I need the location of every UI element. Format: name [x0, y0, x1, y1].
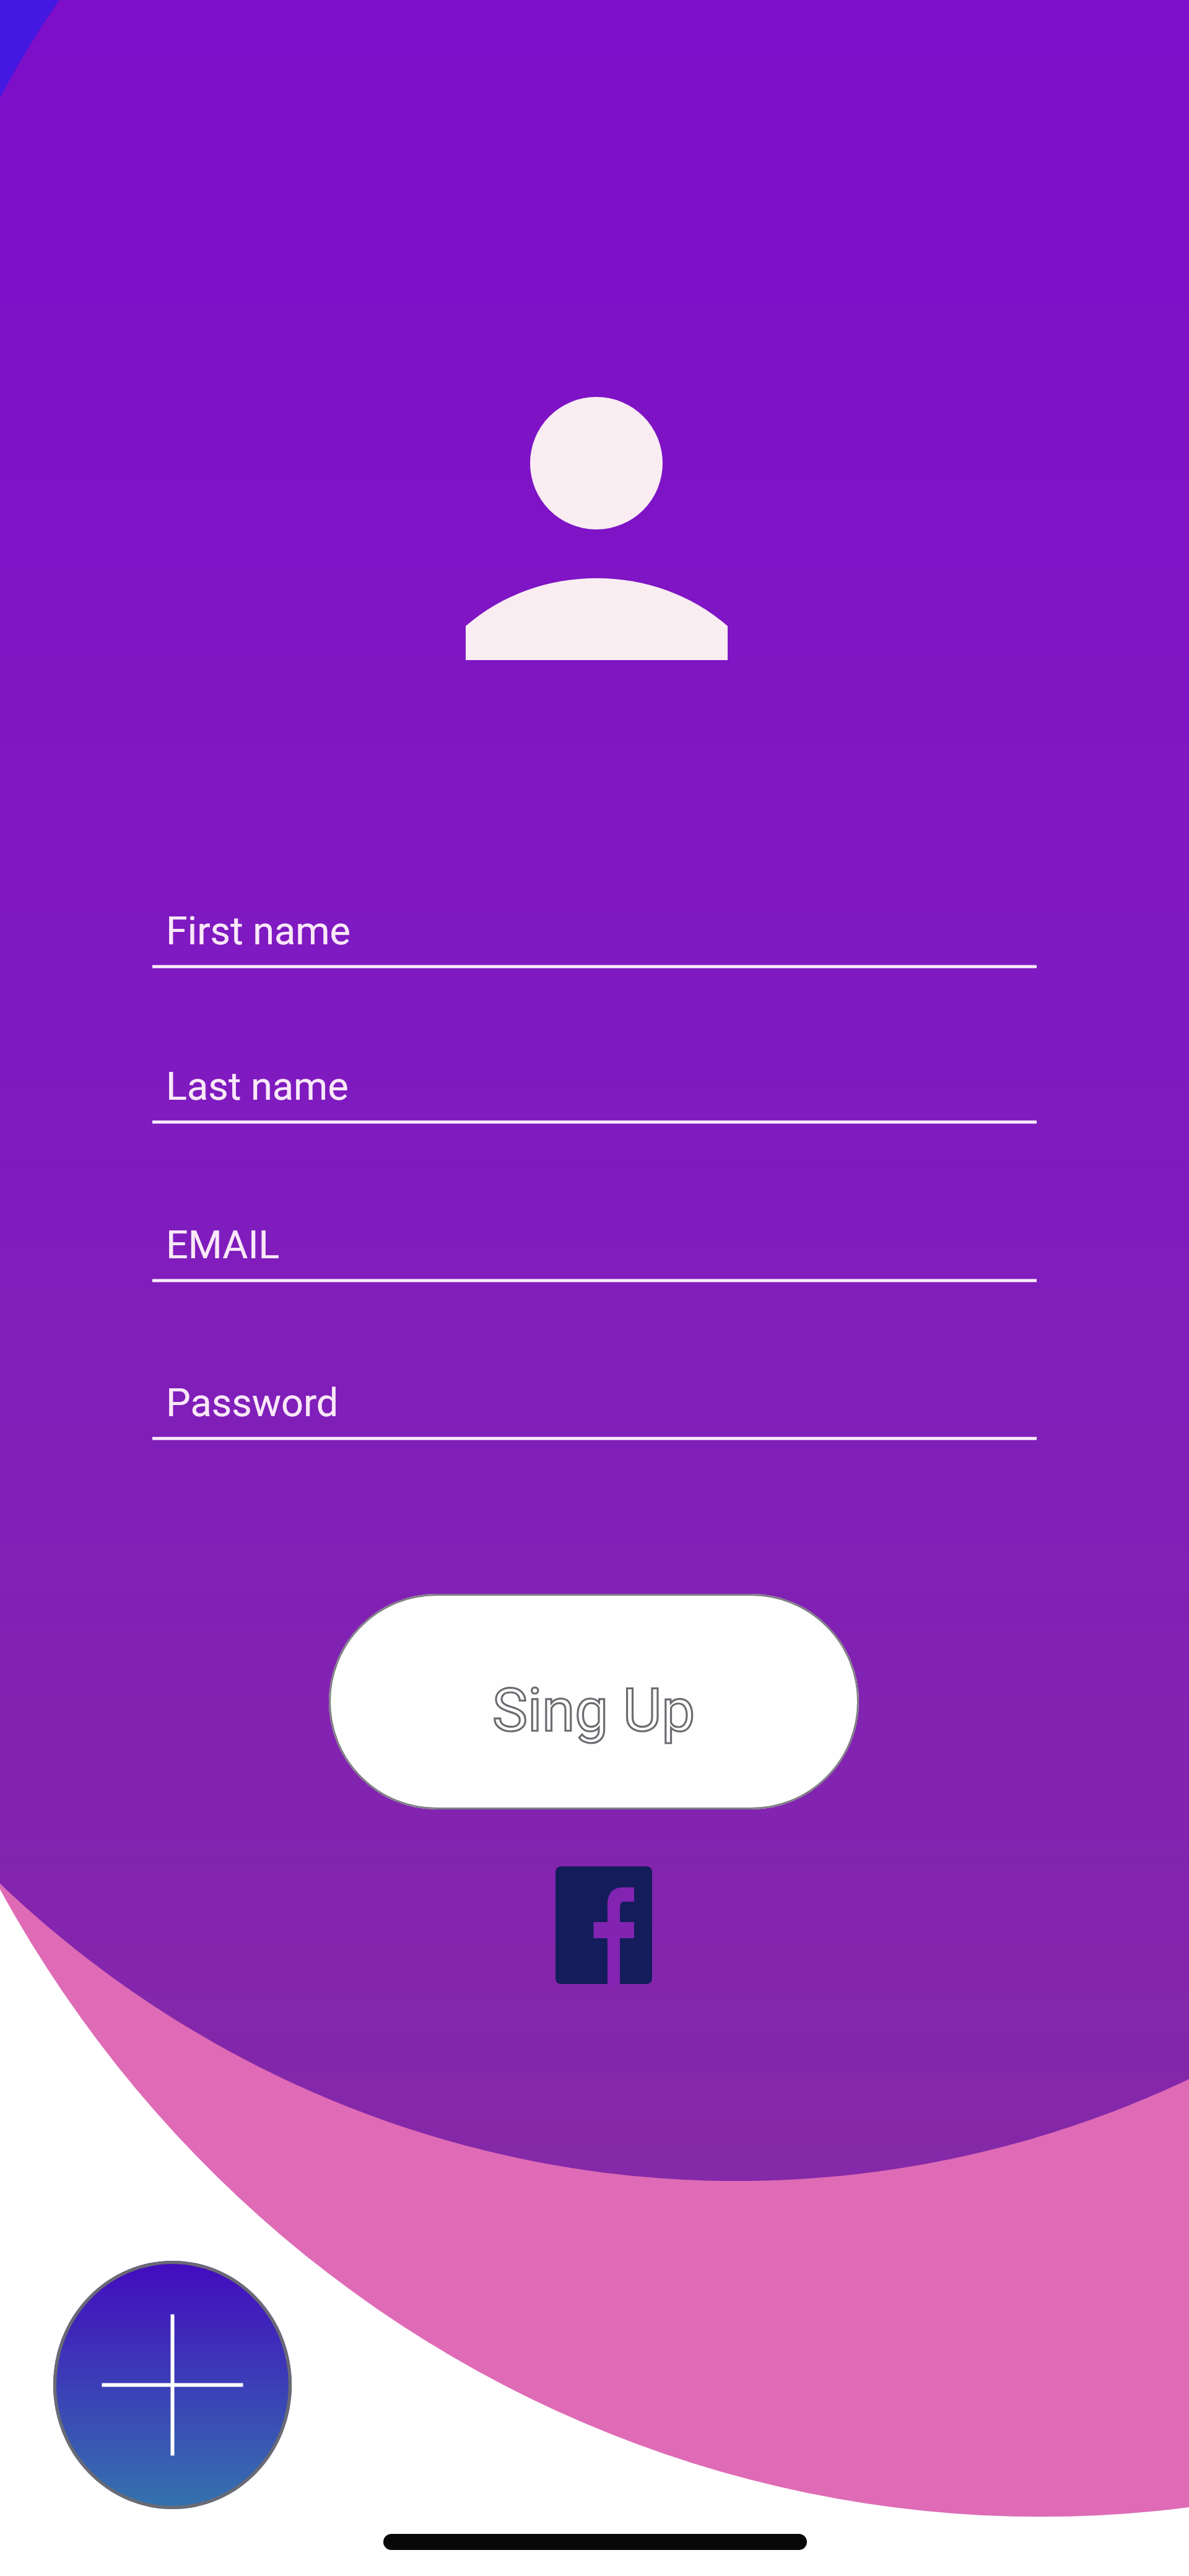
button[interactable]	[329, 1594, 859, 1809]
button[interactable]: Sign up with Facebook	[555, 1866, 652, 1984]
button[interactable]: Add	[53, 2261, 292, 2509]
